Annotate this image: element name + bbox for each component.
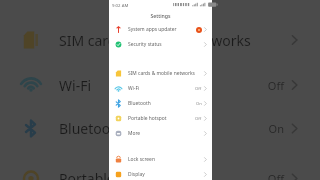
staticText: On [268,121,284,136]
staticText: Wi-Fi [59,76,92,95]
staticText: Off [267,171,284,180]
staticText: Off [195,86,202,92]
staticText: Settings [109,12,212,19]
staticText: Off [195,116,202,122]
staticText: Portable hotspot [128,115,167,122]
staticText: More [128,130,141,137]
staticText: Bluetooth [128,100,151,107]
button[interactable]: System apps updater [109,22,212,37]
button[interactable]: Lock screen [109,152,212,167]
button[interactable]: More [109,126,212,141]
staticText: Off [267,78,284,93]
button[interactable]: Bluetooth [109,96,212,111]
staticText: SIM cards & mobile networks [59,31,251,50]
button[interactable]: Display [109,167,212,180]
staticText: Bluetooth [59,119,124,138]
button[interactable]: Portable hotspot [109,111,212,126]
button[interactable]: Security status [109,37,212,52]
staticText: Lock screen [128,156,155,163]
button[interactable]: Wi-Fi [109,81,212,96]
staticText: Wi-Fi [128,85,140,92]
staticText: Portable hotspot [59,169,170,180]
staticText: SIM cards & mobile networks [128,70,195,77]
button[interactable]: SIM cards & mobile networks [109,66,212,81]
staticText: System apps updater [128,26,177,33]
staticText: Security status [128,41,162,48]
staticText: 9:02 AM [112,2,129,8]
staticText: Display [128,171,145,178]
staticText: On [196,101,202,107]
